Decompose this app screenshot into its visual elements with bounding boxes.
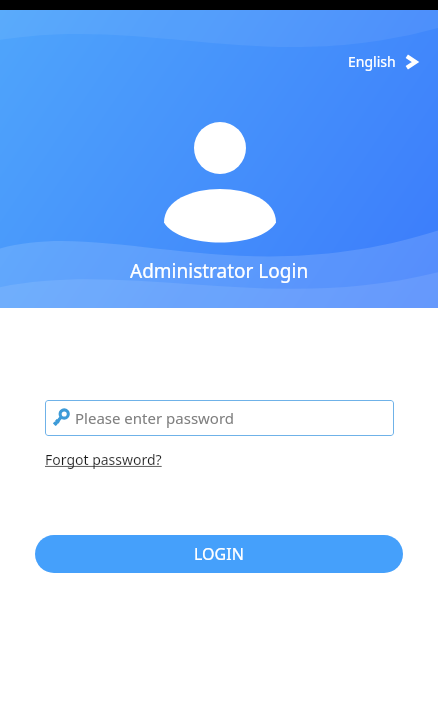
staticText: Please enter password [75, 408, 235, 428]
button[interactable]: Forgot password? [45, 450, 162, 469]
button[interactable]: English [342, 48, 424, 75]
other: Choose language [404, 53, 418, 71]
staticText: Forgot password? [45, 450, 162, 469]
staticText: LOGIN [194, 543, 244, 565]
button[interactable]: LOGIN [35, 535, 403, 573]
staticText: English [348, 52, 396, 71]
staticText: Administrator Login [130, 258, 309, 284]
button[interactable]: Please enter password [45, 400, 394, 436]
